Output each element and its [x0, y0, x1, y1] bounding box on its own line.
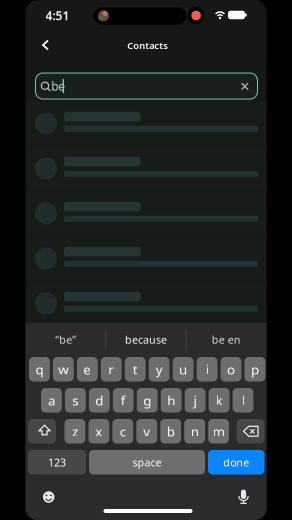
button[interactable]: d — [89, 388, 110, 412]
staticText: w — [58, 360, 68, 378]
staticText: t — [133, 360, 138, 378]
staticText: g — [143, 391, 151, 409]
button[interactable]: Numbers — [28, 450, 86, 474]
staticText: v — [143, 422, 150, 440]
button[interactable]: s — [65, 388, 86, 412]
button[interactable]: l — [233, 388, 253, 412]
staticText: d — [95, 391, 103, 409]
button[interactable]: h — [161, 388, 182, 412]
button[interactable]: Contact — [25, 146, 266, 191]
button[interactable]: v — [136, 419, 157, 443]
button[interactable]: u — [173, 357, 193, 381]
staticText: a — [48, 391, 55, 409]
staticText: s — [72, 391, 78, 409]
staticText: l — [241, 391, 244, 409]
staticText: y — [156, 360, 163, 378]
staticText: r — [108, 360, 114, 378]
button[interactable]: e — [77, 357, 98, 381]
staticText: j — [194, 391, 197, 409]
staticText: k — [216, 391, 223, 409]
button[interactable]: m — [208, 419, 229, 443]
button[interactable]: done — [208, 450, 264, 474]
button[interactable]: w — [53, 357, 74, 381]
staticText: be en — [212, 332, 241, 347]
button[interactable]: t — [125, 357, 146, 381]
staticText: 4:51 — [45, 7, 69, 23]
button[interactable]: be en — [187, 327, 265, 351]
button[interactable]: b — [160, 419, 181, 443]
button[interactable]: Back — [35, 36, 55, 54]
button[interactable]: Contact — [25, 101, 266, 146]
button[interactable]: Contact — [25, 191, 266, 236]
button[interactable]: p — [244, 357, 265, 381]
button[interactable]: y — [149, 357, 170, 381]
button[interactable]: Contact — [25, 236, 266, 281]
staticText: m — [213, 422, 225, 440]
button[interactable]: k — [209, 388, 229, 412]
staticText: “be” — [55, 332, 76, 347]
staticText: p — [251, 360, 259, 378]
button[interactable]: x — [88, 419, 109, 443]
staticText: c — [120, 422, 126, 440]
staticText: n — [191, 422, 199, 440]
button[interactable]: Contact — [25, 281, 266, 326]
staticText: i — [206, 360, 209, 378]
staticText: u — [179, 360, 187, 378]
button[interactable]: space — [89, 450, 205, 474]
staticText: h — [167, 391, 175, 409]
staticText: o — [227, 360, 235, 378]
button[interactable]: Emoji — [39, 487, 59, 507]
button[interactable]: o — [221, 357, 241, 381]
staticText: f — [121, 391, 126, 409]
staticText: done — [223, 455, 249, 469]
button[interactable]: Search — [35, 73, 257, 99]
button[interactable]: Dictate — [233, 486, 253, 506]
button[interactable]: Delete — [236, 419, 264, 443]
staticText: q — [35, 360, 43, 378]
button[interactable]: z — [64, 419, 85, 443]
button[interactable]: j — [185, 388, 205, 412]
staticText: 123 — [48, 455, 66, 469]
staticText: be — [51, 78, 65, 94]
button[interactable]: Clear search text — [237, 78, 253, 94]
button[interactable]: n — [184, 419, 205, 443]
button[interactable]: c — [112, 419, 133, 443]
button[interactable]: q — [29, 357, 50, 381]
staticText: because — [125, 332, 167, 347]
staticText: e — [83, 360, 91, 378]
button[interactable]: g — [137, 388, 158, 412]
button[interactable]: r — [101, 357, 122, 381]
button[interactable]: f — [113, 388, 134, 412]
staticText: Contacts — [127, 39, 168, 51]
button[interactable]: a — [41, 388, 62, 412]
button[interactable]: i — [197, 357, 217, 381]
staticText: space — [132, 455, 161, 469]
staticText: b — [167, 422, 175, 440]
button[interactable]: Shift — [28, 419, 56, 443]
button[interactable]: because — [107, 327, 185, 351]
button[interactable]: “be” — [27, 327, 105, 351]
staticText: z — [72, 422, 78, 440]
staticText: x — [95, 422, 102, 440]
